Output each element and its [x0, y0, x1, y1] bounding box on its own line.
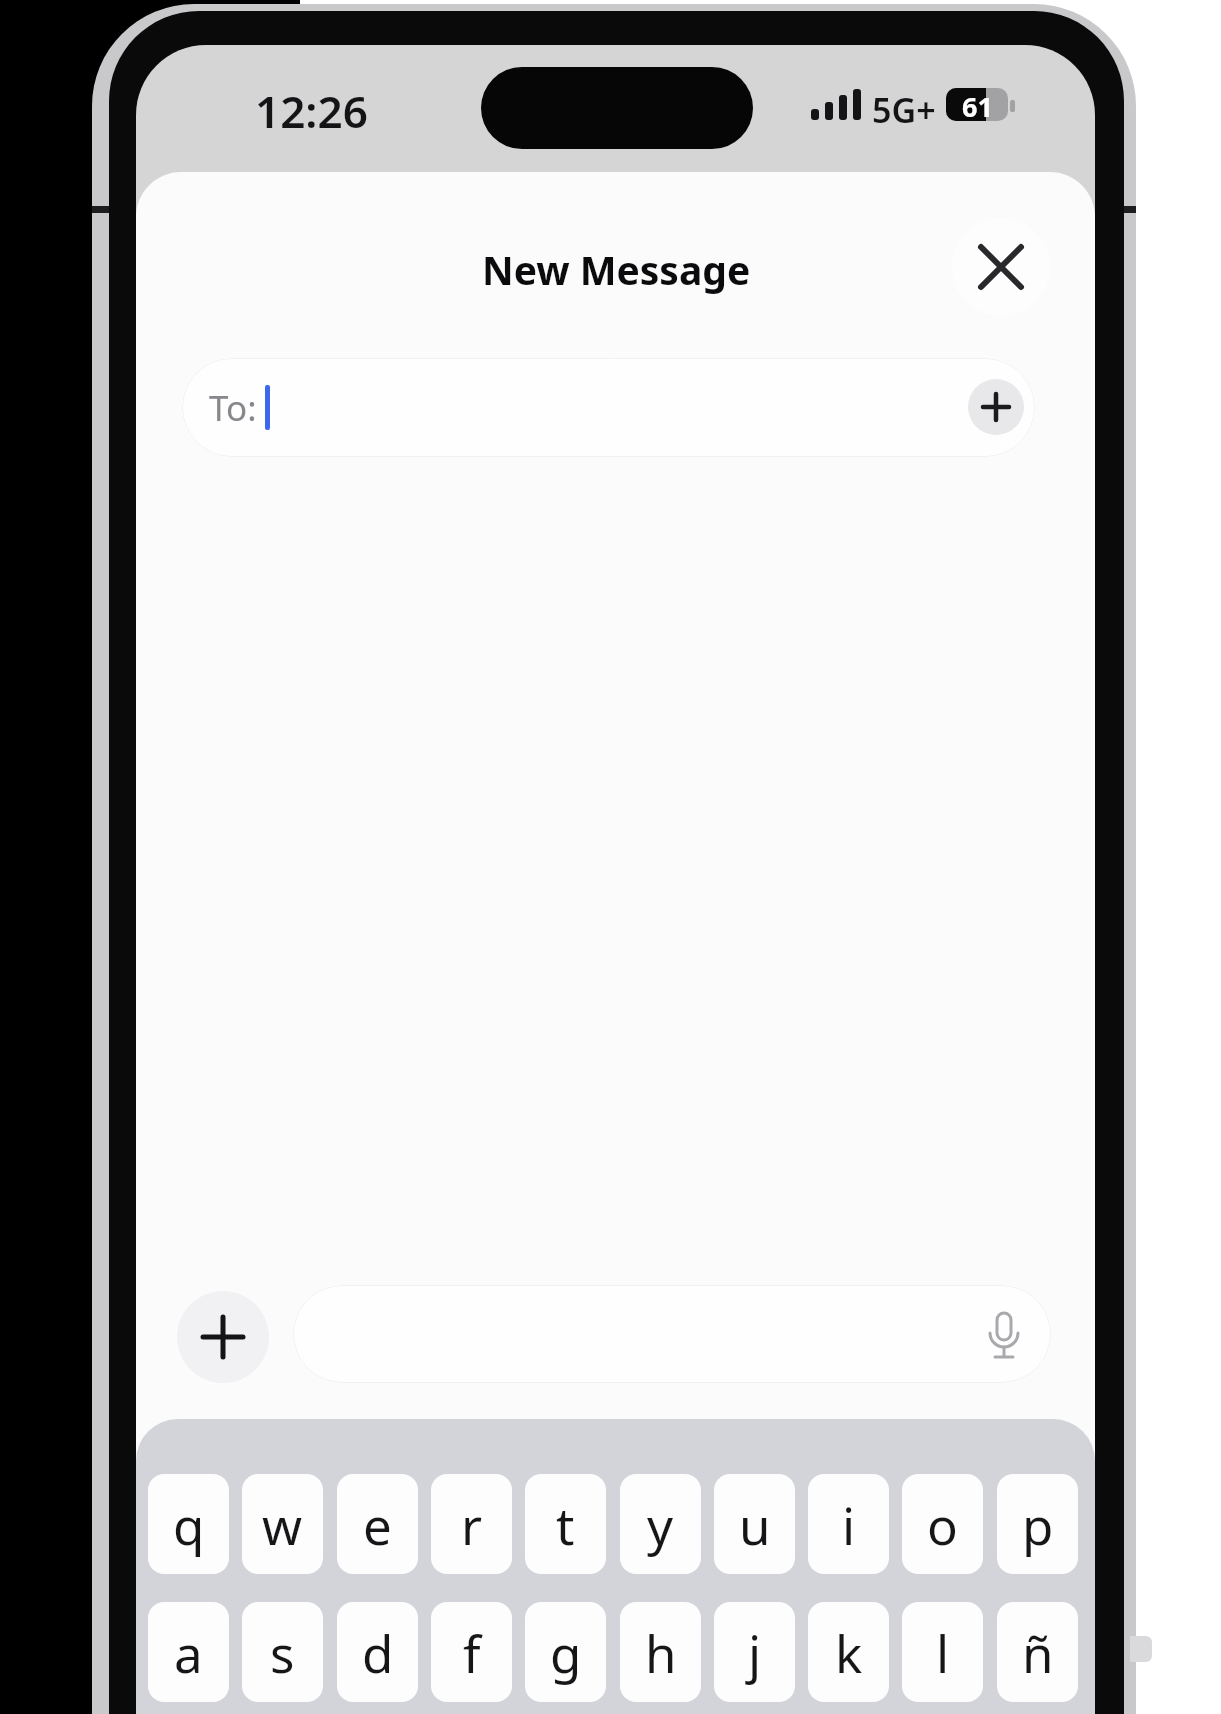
staticText: s	[270, 1618, 295, 1687]
button[interactable]: y	[620, 1474, 701, 1574]
button[interactable]	[293, 1285, 1051, 1383]
staticText: 5G+	[872, 87, 936, 127]
button[interactable]: e	[337, 1474, 418, 1574]
button[interactable]: p	[997, 1474, 1078, 1574]
button[interactable]: h	[620, 1602, 701, 1702]
button[interactable]: u	[714, 1474, 795, 1574]
button[interactable]	[952, 218, 1050, 316]
staticText: New Message	[482, 243, 751, 296]
button[interactable]	[177, 1291, 269, 1383]
button[interactable]: q	[148, 1474, 229, 1574]
staticText: q	[173, 1490, 205, 1559]
staticText: y	[647, 1490, 674, 1559]
staticText: j	[748, 1618, 762, 1687]
staticText: f	[463, 1618, 481, 1687]
button[interactable]: t	[525, 1474, 606, 1574]
button[interactable]: f	[431, 1602, 512, 1702]
staticText: u	[739, 1490, 771, 1559]
staticText: l	[936, 1618, 950, 1687]
button[interactable]: w	[242, 1474, 323, 1574]
staticText: d	[362, 1618, 394, 1687]
staticText: k	[835, 1618, 863, 1687]
staticText: ñ	[1022, 1618, 1054, 1687]
button[interactable]	[968, 379, 1024, 435]
button[interactable]: l	[902, 1602, 983, 1702]
staticText: To:	[209, 384, 257, 432]
button[interactable]: g	[525, 1602, 606, 1702]
staticText: a	[174, 1618, 203, 1687]
button[interactable]: ñ	[997, 1602, 1078, 1702]
button[interactable]: j	[714, 1602, 795, 1702]
staticText: h	[645, 1618, 677, 1687]
button[interactable]: s	[242, 1602, 323, 1702]
staticText: i	[842, 1490, 856, 1559]
staticText: 61	[962, 88, 993, 121]
button[interactable]: k	[808, 1602, 889, 1702]
button[interactable]: To:	[182, 358, 1035, 457]
button[interactable]: r	[431, 1474, 512, 1574]
staticText: g	[550, 1618, 582, 1687]
button[interactable]: i	[808, 1474, 889, 1574]
staticText: r	[461, 1490, 483, 1559]
staticText: 12:26	[255, 81, 368, 141]
staticText: t	[556, 1490, 575, 1559]
staticText: p	[1022, 1490, 1054, 1559]
staticText: e	[363, 1490, 392, 1559]
staticText: w	[262, 1490, 303, 1559]
button[interactable]: a	[148, 1602, 229, 1702]
staticText: o	[927, 1490, 958, 1559]
button[interactable]: d	[337, 1602, 418, 1702]
button[interactable]: o	[902, 1474, 983, 1574]
